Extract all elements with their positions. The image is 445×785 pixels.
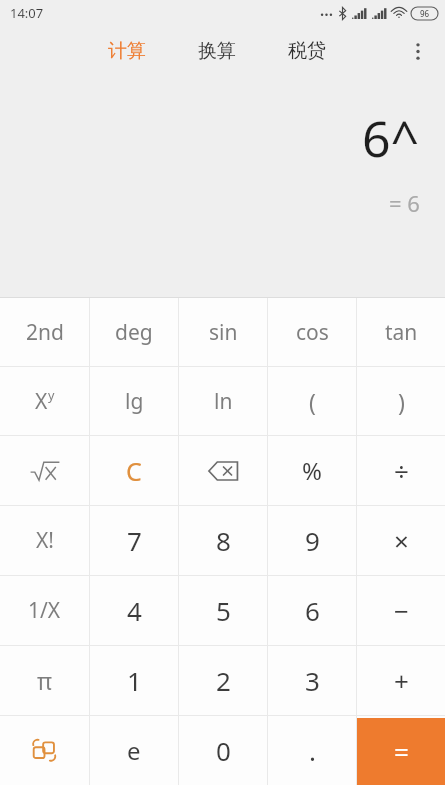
button[interactable]: cos — [268, 298, 356, 366]
button[interactable]: 8 — [179, 506, 267, 575]
button[interactable]: Square root — [0, 436, 89, 505]
staticText: ÷ — [394, 453, 409, 488]
staticText: 8 — [216, 523, 231, 558]
button[interactable]: 1 — [90, 646, 178, 715]
staticText: % — [302, 454, 322, 487]
staticText: 1 — [127, 663, 142, 698]
staticText: sin — [209, 318, 238, 347]
button[interactable]: lg — [90, 367, 178, 435]
button[interactable]: C — [90, 436, 178, 505]
staticText: = — [394, 734, 409, 769]
button[interactable]: × — [357, 506, 445, 575]
button[interactable]: deg — [90, 298, 178, 366]
staticText: + — [394, 663, 409, 698]
staticText: 换算 — [198, 39, 236, 63]
staticText: ) — [398, 386, 405, 417]
staticText: 9 — [305, 523, 320, 558]
staticText: deg — [115, 318, 153, 347]
button[interactable]: − — [357, 576, 445, 645]
staticText: 2nd — [26, 318, 64, 347]
button[interactable]: e — [90, 716, 178, 785]
staticText: 2 — [216, 663, 231, 698]
button[interactable]: 0 — [179, 716, 267, 785]
button[interactable]: X — [0, 367, 89, 435]
button[interactable]: % — [268, 436, 356, 505]
staticText: 3 — [305, 663, 320, 698]
staticText: ( — [309, 386, 316, 417]
button[interactable]: 6 — [268, 576, 356, 645]
staticText: X! — [36, 526, 54, 555]
staticText: tan — [385, 318, 418, 347]
button[interactable]: ( — [268, 367, 356, 435]
staticText: π — [37, 665, 53, 696]
staticText: y — [48, 387, 55, 404]
staticText: 6 — [305, 593, 320, 628]
button[interactable]: 2nd — [0, 298, 89, 366]
staticText: 计算 — [108, 39, 146, 63]
button[interactable]: 7 — [90, 506, 178, 575]
staticText: e — [127, 734, 141, 767]
staticText: 1/X — [28, 596, 61, 625]
button[interactable]: Backspace — [179, 436, 267, 505]
button[interactable]: 2 — [179, 646, 267, 715]
button[interactable]: 1/X — [0, 576, 89, 645]
button[interactable]: ÷ — [357, 436, 445, 505]
button[interactable]: X! — [0, 506, 89, 575]
button[interactable]: 计算 — [100, 31, 154, 71]
staticText: 96 — [420, 8, 430, 19]
staticText: 7 — [127, 523, 142, 558]
staticText: . — [309, 733, 316, 768]
staticText: lg — [125, 387, 144, 416]
button[interactable]: 5 — [179, 576, 267, 645]
button[interactable]: 9 — [268, 506, 356, 575]
button[interactable]: 4 — [90, 576, 178, 645]
button[interactable]: 换算 — [190, 31, 244, 71]
staticText: cos — [296, 318, 329, 347]
button[interactable]: π — [0, 646, 89, 715]
button[interactable]: + — [357, 646, 445, 715]
button[interactable]: . — [268, 716, 356, 785]
staticText: 0 — [216, 733, 231, 768]
staticText: × — [394, 523, 409, 558]
staticText: 4 — [127, 593, 142, 628]
staticText: 税贷 — [288, 39, 326, 63]
staticText: 5 — [216, 593, 231, 628]
staticText: − — [394, 593, 409, 628]
button[interactable]: ln — [179, 367, 267, 435]
button[interactable]: = — [357, 718, 445, 785]
staticText: 14:07 — [10, 4, 44, 22]
staticText: C — [126, 454, 142, 488]
button[interactable]: sin — [179, 298, 267, 366]
staticText: ln — [214, 387, 233, 416]
button[interactable]: Unit conversion — [0, 716, 89, 785]
button[interactable]: tan — [357, 298, 445, 366]
button[interactable]: 3 — [268, 646, 356, 715]
button[interactable]: 税贷 — [280, 31, 334, 71]
staticText: 6^ — [362, 104, 420, 172]
staticText: X — [35, 387, 48, 416]
button[interactable]: ) — [357, 367, 445, 435]
button[interactable]: More options — [395, 28, 441, 74]
staticText: = 6 — [389, 188, 420, 218]
